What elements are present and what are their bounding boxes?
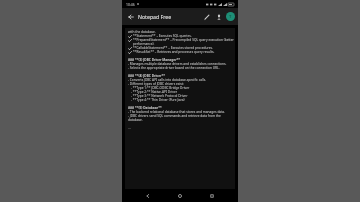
staticText: **CallableStatement** – Executes stored … [133, 46, 213, 50]
staticText: **Statement** – Executes SQL queries. [133, 34, 192, 38]
staticText: ### **(4) JDBC Driver** [128, 74, 165, 78]
button[interactable]: Home [174, 190, 186, 202]
staticText: - Selects the appropriate driver based o… [128, 66, 220, 70]
button[interactable]: Back [142, 190, 154, 202]
button[interactable]: Recent apps [206, 190, 218, 202]
staticText: --- [128, 126, 132, 130]
staticText: **ResultSet** – Retrieves and processes … [133, 50, 215, 54]
staticText: 10:46 [126, 2, 135, 7]
button[interactable]: Account [226, 12, 235, 21]
button[interactable]: Edit [201, 11, 212, 22]
button[interactable]: Back [125, 11, 136, 22]
staticText: - Converts JDBC API calls into database-… [128, 78, 207, 82]
staticText: T [229, 14, 232, 20]
staticText: - The backend relational database that s… [128, 110, 225, 114]
staticText: ### **(5) Database** [128, 106, 162, 110]
staticText: - **Type 1:** JDBC-ODBC Bridge Driver [131, 86, 190, 90]
button[interactable]: Voice input [213, 11, 224, 22]
staticText: - **Type 4:** Thin Driver (Pure Java) [131, 98, 185, 102]
staticText: - **Type 3:** Network Protocol Driver [131, 94, 188, 98]
staticText: - **Type 2:** Native-API Driver [131, 90, 178, 94]
staticText: **PreparedStatement** – Precompiled SQL … [133, 38, 234, 46]
staticText: - Manages multiple database drivers and … [128, 62, 227, 66]
staticText: with the database. [128, 30, 156, 34]
staticText: - JDBC drivers send SQL commands and ret… [128, 114, 234, 122]
staticText: Notepad Free [138, 13, 172, 20]
staticText: - Different types of JDBC drivers exist: [128, 82, 184, 86]
staticText: ### **(3) JDBC Driver Manager** [128, 58, 181, 62]
